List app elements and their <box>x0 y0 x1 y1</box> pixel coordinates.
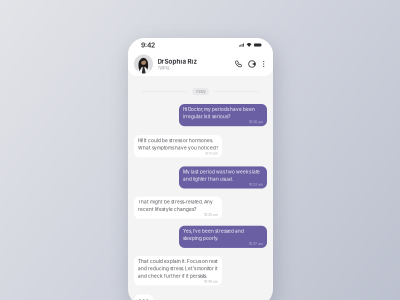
staticText: Hi Doctor, my periods have been irregula… <box>183 106 255 119</box>
staticText: That might be stress-related. Any recent… <box>138 199 213 212</box>
staticText: 9:42 <box>141 41 155 49</box>
staticText: My last period was two weeks late and li… <box>183 169 260 182</box>
staticText: 10:35 am <box>204 213 218 217</box>
button[interactable]: Hi Doctor, my periods have been irregula… <box>179 104 267 126</box>
button[interactable]: Yes, I've been stressed and sleeping poo… <box>179 226 267 248</box>
staticText: Dr Sophia Riz <box>157 58 197 65</box>
button[interactable]: Hi! It could be stress or hormones. What… <box>134 135 222 157</box>
staticText: That could explain it. Focus on rest and… <box>138 258 218 279</box>
staticText: Yes, I've been stressed and sleeping poo… <box>183 228 244 241</box>
button[interactable]: That could explain it. Focus on rest and… <box>134 256 222 285</box>
staticText: Today <box>195 89 205 94</box>
staticText: 10:33 am <box>249 182 263 187</box>
button[interactable]: That might be stress-related. Any recent… <box>134 197 222 219</box>
staticText: 10:40 am <box>204 279 218 283</box>
button[interactable]: My last period was two weeks late and li… <box>179 166 267 189</box>
staticText: Typing... <box>157 65 171 70</box>
button[interactable]: More options <box>262 60 265 68</box>
staticText: Hi! It could be stress or hormones. What… <box>138 138 218 151</box>
staticText: 10:31 am <box>205 151 218 155</box>
staticText: 10:37 am <box>249 242 263 246</box>
button[interactable]: Video call <box>248 60 256 68</box>
button[interactable]: Voice call <box>235 60 242 68</box>
staticText: 10:30 am <box>249 120 263 124</box>
